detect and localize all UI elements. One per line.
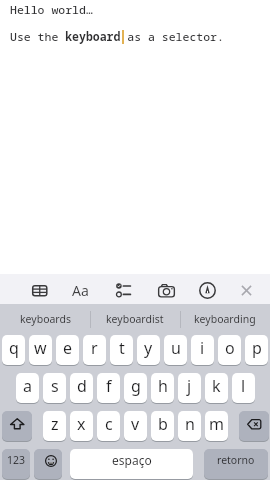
staticText: i: [200, 337, 205, 359]
button[interactable]: c: [97, 411, 120, 441]
staticText: c: [105, 413, 113, 435]
button[interactable]: [192, 276, 222, 305]
staticText: h: [158, 375, 168, 397]
staticText: t: [119, 337, 125, 359]
staticText: j: [187, 375, 192, 397]
button[interactable]: a: [16, 373, 39, 403]
staticText: m: [209, 413, 224, 435]
staticText: v: [131, 413, 140, 435]
button[interactable]: w: [29, 335, 52, 365]
staticText: u: [171, 337, 181, 359]
button[interactable]: Aa: [65, 276, 95, 305]
staticText: w: [34, 337, 47, 359]
button[interactable]: s: [43, 373, 66, 403]
button[interactable]: u: [164, 335, 187, 365]
staticText: p: [252, 337, 262, 359]
button[interactable]: keyboards: [0, 304, 90, 335]
button[interactable]: k: [205, 373, 228, 403]
staticText: s: [51, 375, 59, 397]
staticText: 123: [7, 453, 26, 467]
button[interactable]: [231, 276, 261, 305]
staticText: espaço: [112, 452, 152, 468]
staticText: a: [23, 375, 32, 397]
button[interactable]: [108, 276, 138, 305]
button[interactable]: h: [151, 373, 174, 403]
staticText: Use the keyboard as a selector.: [10, 29, 224, 45]
staticText: q: [9, 337, 19, 359]
button[interactable]: n: [178, 411, 201, 441]
button[interactable]: [34, 449, 62, 479]
button[interactable]: retorno: [204, 449, 268, 479]
staticText: x: [77, 413, 86, 435]
button[interactable]: p: [245, 335, 268, 365]
button[interactable]: [2, 411, 32, 441]
button[interactable]: keyboardist: [90, 304, 180, 335]
staticText: Aa: [72, 281, 89, 300]
button[interactable]: espaço: [70, 449, 193, 479]
staticText: d: [77, 375, 87, 397]
button[interactable]: [151, 276, 181, 305]
staticText: retorno: [217, 453, 255, 467]
staticText: r: [91, 337, 98, 359]
staticText: n: [185, 413, 195, 435]
staticText: l: [241, 375, 246, 397]
button[interactable]: v: [124, 411, 147, 441]
staticText: keyboards: [20, 312, 71, 326]
button[interactable]: [25, 276, 55, 305]
button[interactable]: d: [70, 373, 93, 403]
button[interactable]: e: [56, 335, 79, 365]
button[interactable]: x: [70, 411, 93, 441]
button[interactable]: j: [178, 373, 201, 403]
staticText: keyboardist: [106, 312, 164, 326]
staticText: b: [158, 413, 168, 435]
staticText: o: [225, 337, 235, 359]
button[interactable]: i: [191, 335, 214, 365]
button[interactable]: l: [232, 373, 255, 403]
staticText: e: [63, 337, 73, 359]
button[interactable]: f: [97, 373, 120, 403]
button[interactable]: t: [110, 335, 133, 365]
button[interactable]: y: [137, 335, 160, 365]
button[interactable]: m: [205, 411, 228, 441]
button[interactable]: r: [83, 335, 106, 365]
button[interactable]: [239, 411, 269, 441]
button[interactable]: b: [151, 411, 174, 441]
button[interactable]: keyboarding: [180, 304, 270, 335]
staticText: keyboarding: [194, 312, 256, 326]
staticText: k: [212, 375, 221, 397]
staticText: f: [106, 375, 112, 397]
button[interactable]: o: [218, 335, 241, 365]
staticText: g: [131, 375, 141, 397]
button[interactable]: q: [2, 335, 25, 365]
staticText: Hello world…: [10, 2, 93, 18]
button[interactable]: z: [43, 411, 66, 441]
button[interactable]: 123: [2, 449, 30, 479]
staticText: y: [144, 337, 153, 359]
staticText: z: [51, 413, 59, 435]
button[interactable]: g: [124, 373, 147, 403]
